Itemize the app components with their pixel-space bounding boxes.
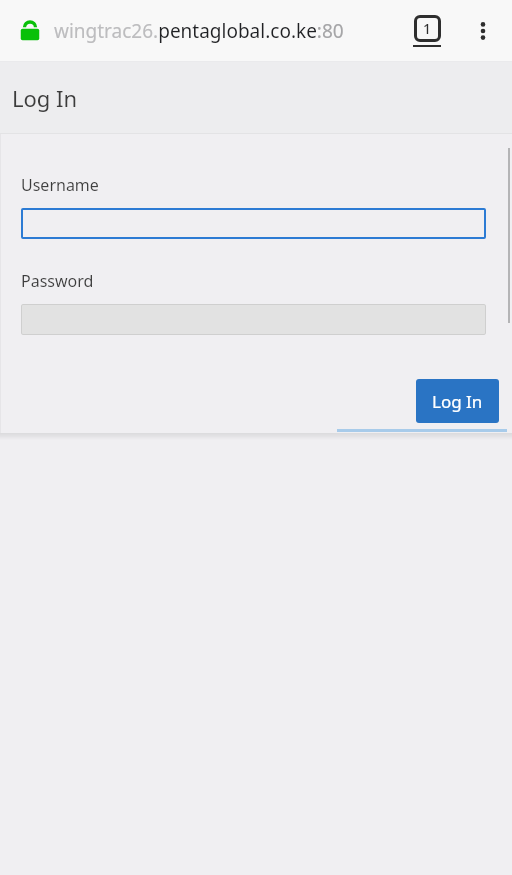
button[interactable]: Username text field (21, 208, 486, 239)
button[interactable]: Log In (416, 379, 499, 423)
staticText: Password (21, 270, 94, 292)
staticText: Log In (432, 390, 483, 413)
staticText: Log In (12, 83, 78, 113)
button[interactable]: wingtrac26.pentaglobal.co.ke:80 (54, 0, 402, 62)
button[interactable]: 1 open tab, switch tabs (404, 8, 450, 54)
staticText: wingtrac26.pentaglobal.co.ke:80 (54, 18, 344, 44)
button[interactable]: More options (460, 8, 506, 54)
button[interactable]: Password text field (21, 304, 486, 335)
staticText: 1 (423, 19, 432, 38)
staticText: Username (21, 174, 99, 196)
button[interactable]: Site security information (14, 15, 46, 47)
